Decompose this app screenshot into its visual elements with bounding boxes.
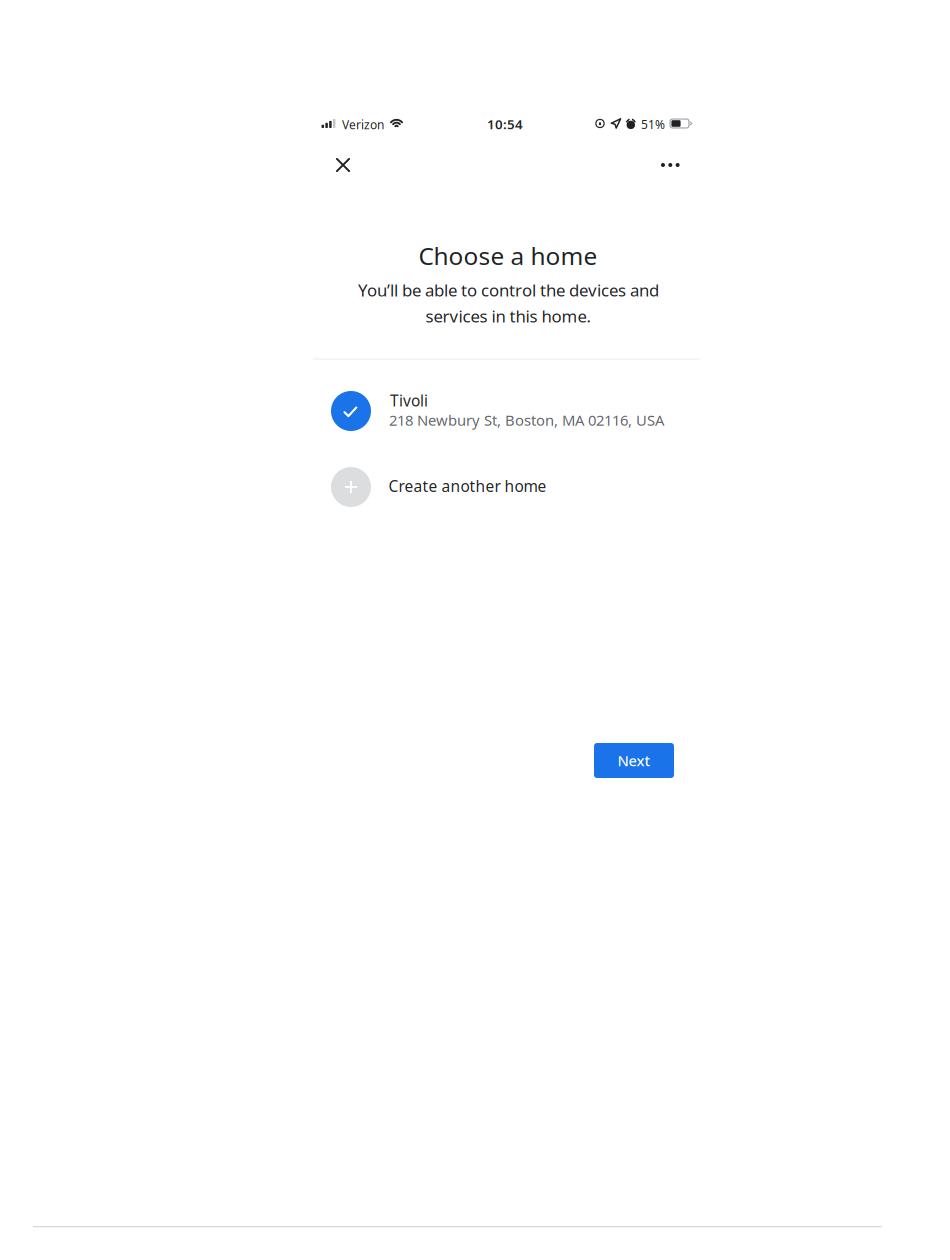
button[interactable]: More options <box>653 148 687 182</box>
staticText: Tivoli <box>390 390 428 411</box>
staticText: You’ll be able to control the devices an… <box>358 279 659 301</box>
button[interactable]: Next <box>594 743 674 778</box>
staticText: Choose a home <box>418 239 597 272</box>
button[interactable]: Close <box>326 148 360 182</box>
button[interactable]: Create another home <box>313 458 700 516</box>
staticText: Verizon <box>342 116 384 132</box>
button[interactable]: Tivoli <box>313 382 700 440</box>
staticText: 218 Newbury St, Boston, MA 02116, USA <box>389 410 664 430</box>
staticText: Create another home <box>388 475 546 497</box>
staticText: Next <box>617 751 650 770</box>
staticText: 10:54 <box>487 115 523 133</box>
staticText: services in this home. <box>425 305 591 327</box>
staticText: 51% <box>641 116 665 132</box>
